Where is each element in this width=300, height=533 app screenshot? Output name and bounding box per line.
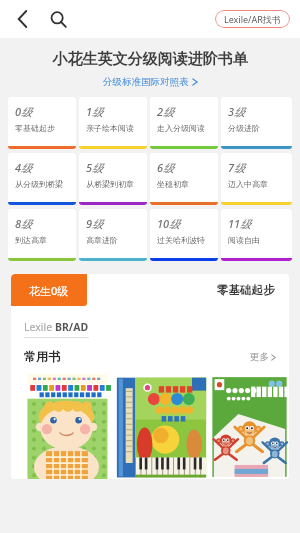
button[interactable]: Search — [42, 3, 74, 35]
button[interactable]: Back — [6, 3, 38, 35]
staticText: 4级 — [15, 160, 33, 175]
staticText: BR/AD — [55, 320, 89, 334]
button[interactable]: 5级 — [79, 153, 147, 205]
staticText: 迈入中高章 — [228, 179, 268, 189]
button[interactable]: 6级 — [150, 153, 218, 205]
staticText: 分级进阶 — [228, 123, 260, 133]
button[interactable]: Sing Along — [115, 374, 208, 479]
staticText: 从分级到桥梁 — [15, 179, 63, 189]
button[interactable]: 1级 — [79, 97, 147, 149]
button[interactable]: Three Little Monkeys — [210, 374, 289, 479]
button[interactable]: 更多 — [250, 351, 276, 363]
staticText: 高章进阶 — [86, 235, 118, 245]
staticText: 亲子绘本阅读 — [86, 123, 134, 133]
staticText: Lexile — [24, 320, 55, 334]
staticText: 零基础起步 — [15, 123, 55, 133]
staticText: 到达高章 — [15, 235, 47, 245]
staticText: 阅读自由 — [228, 235, 260, 245]
staticText: 3级 — [228, 104, 246, 119]
staticText: 7级 — [228, 160, 246, 175]
button[interactable]: Lexile/AR找书 — [215, 10, 290, 28]
staticText: 小花生英文分级阅读进阶书单 — [0, 50, 300, 69]
button[interactable]: 4级 — [8, 153, 76, 205]
staticText: 10级 — [157, 216, 181, 231]
button[interactable]: 10级 — [150, 209, 218, 261]
staticText: 花生0级 — [29, 283, 69, 298]
button[interactable]: Lexile — [24, 320, 89, 334]
button[interactable]: 花生0级 — [11, 274, 87, 306]
button[interactable]: 8级 — [8, 209, 76, 261]
staticText: 过关哈利波特 — [157, 235, 205, 245]
staticText: 2级 — [157, 104, 175, 119]
button[interactable]: 3级 — [221, 97, 292, 149]
staticText: 5级 — [86, 160, 104, 175]
button[interactable]: 9级 — [79, 209, 147, 261]
staticText: 分级标准国际对照表 — [103, 76, 189, 88]
staticText: 常用书 — [24, 349, 60, 364]
button[interactable]: 2级 — [150, 97, 218, 149]
staticText: 坐稳初章 — [157, 179, 189, 189]
staticText: 1级 — [86, 104, 104, 119]
staticText: 从桥梁到初章 — [86, 179, 134, 189]
staticText: 更多 — [250, 351, 269, 363]
staticText: 零基础起步 — [217, 283, 275, 297]
staticText: 6级 — [157, 160, 175, 175]
button[interactable]: 7级 — [221, 153, 292, 205]
staticText: 0级 — [15, 104, 33, 119]
button[interactable]: Where is Baby's Belly Button — [20, 374, 113, 479]
staticText: Lexile/AR找书 — [224, 13, 281, 25]
staticText: 9级 — [86, 216, 104, 231]
button[interactable]: 分级标准国际对照表 — [0, 76, 300, 88]
button[interactable]: 0级 — [8, 97, 76, 149]
staticText: 8级 — [15, 216, 33, 231]
staticText: 11级 — [228, 216, 252, 231]
staticText: 走入分级阅读 — [157, 123, 205, 133]
button[interactable]: 11级 — [221, 209, 292, 261]
